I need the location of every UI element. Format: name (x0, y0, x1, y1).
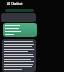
staticText: AI Chatbot (7, 2, 23, 6)
staticText: Smart Assistant (7, 7, 25, 10)
